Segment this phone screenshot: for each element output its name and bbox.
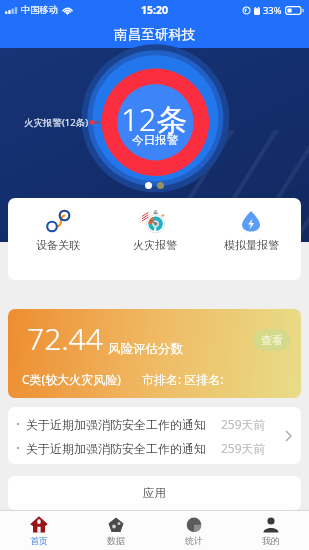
staticText: 首页 [30,535,48,546]
staticText: 火灾报警 [133,238,177,252]
button[interactable]: 72.44 [8,309,301,398]
button[interactable]: 火灾报警 [109,198,201,280]
button[interactable]: 设备关联 [12,198,104,280]
staticText: 风险评估分数 [108,341,183,357]
staticText: 关于近期加强消防安全工作的通知 [26,441,206,456]
button[interactable]: 关于近期加强消防安全工作的通知 [8,407,301,464]
button[interactable]: 应用 [8,476,301,510]
button[interactable]: 统计 [155,511,232,550]
staticText: 南昌至研科技 [114,26,196,43]
staticText: 12条 [121,98,188,140]
button[interactable]: 数据 [77,511,154,550]
staticText: 15:20 [141,3,168,17]
staticText: 模拟量报警 [224,238,279,252]
staticText: 查看 [261,333,283,347]
button[interactable]: 首页 [0,511,77,550]
staticText: 数据 [107,535,125,546]
staticText: 设备关联 [36,238,80,252]
staticText: 市排名: 区排名: [142,371,224,387]
staticText: 33% [263,4,282,17]
button[interactable]: 我的 [232,511,309,550]
staticText: C类(较大火灾风险) [22,371,121,387]
staticText: 中国移动 [21,4,58,16]
button[interactable]: 查看 [253,329,290,351]
staticText: 火灾报警(12条) [24,116,89,129]
staticText: 应用 [143,486,166,500]
staticText: 统计 [185,535,203,546]
other: More notices [285,430,292,442]
staticText: 今日报警 [132,133,178,147]
button[interactable]: 模拟量报警 [205,198,297,280]
staticText: 我的 [262,535,280,546]
staticText: 关于近期加强消防安全工作的通知 [26,417,206,432]
staticText: 72.44 [27,318,103,359]
staticText: 259天前 [221,440,266,456]
staticText: 259天前 [221,416,266,432]
